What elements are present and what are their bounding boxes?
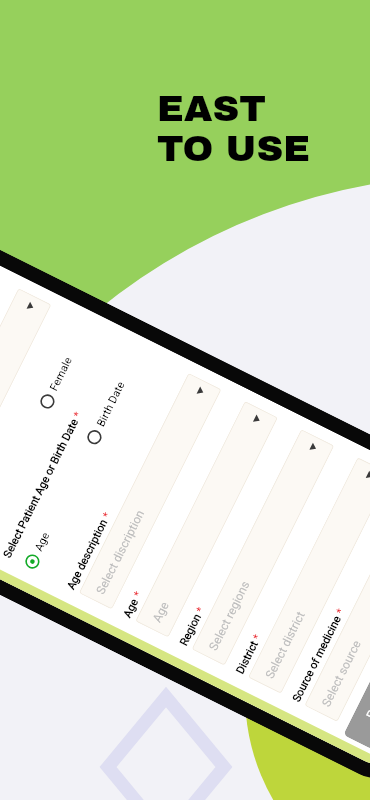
staticText: Birth Date: [94, 379, 128, 429]
staticText: *: [249, 632, 264, 645]
button[interactable]: PREV: [343, 658, 370, 750]
staticText: Select source: [319, 637, 364, 709]
staticText: *: [99, 510, 114, 523]
staticText: Select regions: [206, 578, 253, 653]
button[interactable]: Select regions: [191, 429, 334, 666]
staticText: *: [70, 409, 85, 422]
staticText: Select Patient Age or Birth Date: [1, 416, 81, 560]
staticText: Age: [121, 596, 141, 620]
staticText: EAST: [157, 89, 266, 129]
button[interactable]: Age: [135, 401, 278, 638]
staticText: Select discription: [93, 507, 147, 597]
button[interactable]: radio option: [84, 427, 104, 447]
button[interactable]: Select source: [304, 485, 370, 722]
staticText: PREV: [363, 686, 370, 721]
staticText: *: [130, 589, 145, 602]
button[interactable]: radio option: [22, 551, 42, 572]
staticText: Female: [47, 355, 75, 393]
staticText: Age: [32, 530, 53, 553]
button[interactable]: radio option: [37, 391, 57, 411]
button[interactable]: Select discription: [79, 373, 222, 610]
staticText: Select district: [263, 609, 308, 681]
button[interactable]: Select district: [248, 457, 370, 694]
staticText: Source of medicine: [290, 613, 344, 704]
staticText: Age: [150, 600, 172, 625]
button[interactable]: Name: [0, 288, 52, 525]
staticText: Region: [177, 612, 204, 648]
staticText: *: [332, 606, 347, 619]
staticText: TO USE: [157, 129, 310, 169]
staticText: *: [192, 604, 208, 617]
staticText: Age description: [64, 517, 110, 592]
staticText: District: [234, 639, 261, 676]
